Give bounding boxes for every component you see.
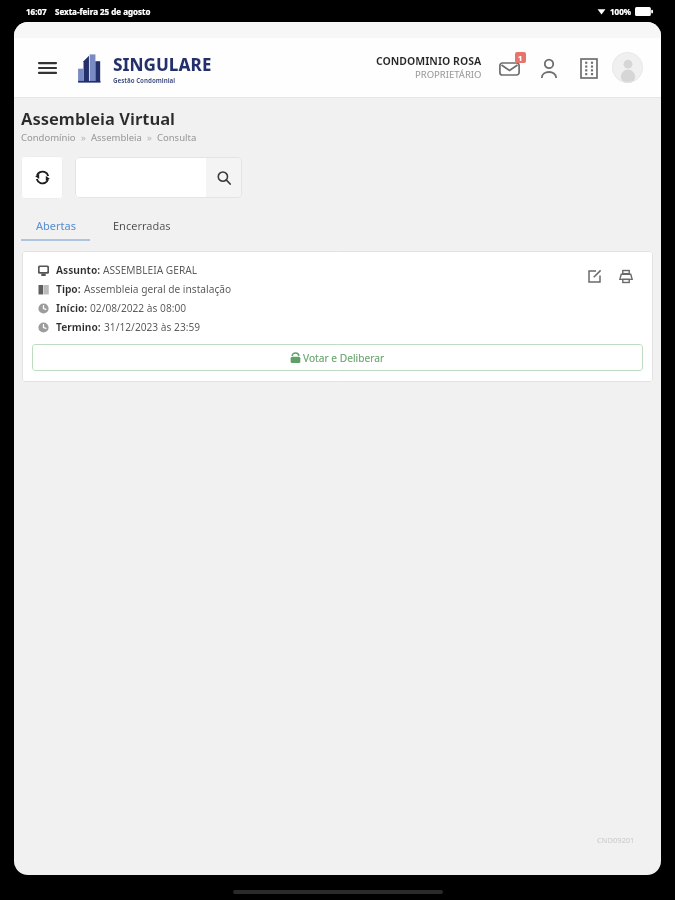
staticText: Início:	[56, 301, 90, 315]
staticText: 16:07	[26, 6, 47, 17]
staticText: CONDOMINIO ROSA	[376, 54, 482, 68]
staticText: Consulta	[157, 131, 197, 144]
staticText: 1	[518, 53, 523, 63]
staticText: Assembleia geral de instalação	[84, 282, 232, 296]
button[interactable]	[75, 157, 206, 198]
button[interactable]: Pesquisar	[206, 157, 242, 198]
button[interactable]: Menu	[32, 53, 62, 83]
staticText: 31/12/2023 às 23:59	[104, 320, 201, 334]
staticText: 02/08/2022 às 08:00	[90, 301, 187, 315]
button[interactable]: Encerradas	[100, 212, 184, 239]
button[interactable]: Mensagens	[494, 53, 524, 83]
staticText: Votar e Deliberar	[303, 351, 385, 365]
button[interactable]: Avatar do usuário	[612, 52, 643, 83]
staticText: Encerradas	[113, 218, 171, 233]
button[interactable]: SINGULARE	[74, 51, 212, 85]
staticText: Sexta-feira 25 de agosto	[55, 6, 151, 17]
staticText: Termino:	[56, 320, 104, 334]
button[interactable]: Perfil	[534, 53, 564, 83]
staticText: Tipo:	[56, 282, 84, 296]
staticText: Abertas	[36, 218, 76, 233]
button[interactable]: Votar e Deliberar	[32, 344, 643, 371]
staticText: Assembleia Virtual	[21, 107, 175, 129]
button[interactable]: Abrir detalhes	[581, 263, 607, 289]
button[interactable]: Atualizar	[21, 156, 63, 199]
staticText: »	[76, 131, 91, 144]
staticText: Assunto:	[56, 263, 103, 277]
staticText: 100%	[610, 6, 631, 17]
button[interactable]: Condomínio	[574, 53, 604, 83]
staticText: CND09201	[597, 835, 635, 845]
staticText: ASSEMBLEIA GERAL	[103, 263, 198, 277]
button[interactable]: Condomínio	[21, 131, 76, 144]
staticText: SINGULARE	[113, 53, 212, 76]
button[interactable]: Imprimir	[613, 263, 639, 289]
staticText: »	[142, 131, 157, 144]
button[interactable]: CONDOMINIO ROSA	[376, 54, 482, 81]
button[interactable]: Assembleia	[91, 131, 142, 144]
staticText: Gestão Condominial	[113, 76, 176, 84]
staticText: PROPRIETÁRIO	[415, 68, 482, 81]
button[interactable]: Abertas	[23, 212, 89, 239]
